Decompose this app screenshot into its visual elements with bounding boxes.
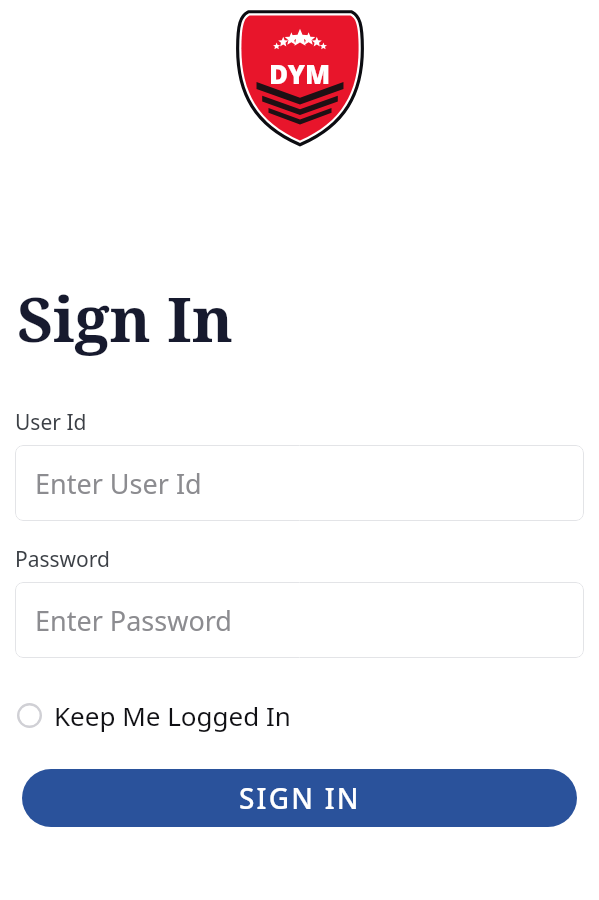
button[interactable]: SIGN IN [22,769,577,827]
button[interactable]: Enter User Id [15,445,584,521]
staticText: Password [15,545,110,574]
staticText: Keep Me Logged In [54,698,291,733]
staticText: DYM [269,56,331,91]
button[interactable]: Enter Password [15,582,584,658]
staticText: User Id [15,408,87,437]
staticText: Sign In [17,276,234,360]
staticText: Enter User Id [35,465,202,502]
staticText: SIGN IN [239,779,361,817]
staticText: Enter Password [35,602,232,639]
other: DYM logo [237,8,363,144]
button[interactable]: Keep Me Logged In [15,694,293,737]
